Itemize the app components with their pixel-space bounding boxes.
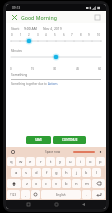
staticText: 45 <box>76 67 80 71</box>
button[interactable]: . <box>82 190 91 199</box>
staticText: i <box>80 159 82 165</box>
staticText: SAVE <box>35 138 43 142</box>
staticText: Something <box>11 73 28 77</box>
button[interactable]: m <box>82 179 91 188</box>
button[interactable]: n <box>72 179 81 188</box>
button[interactable]: t <box>46 157 55 166</box>
button[interactable]: Enter <box>92 190 105 199</box>
button[interactable]: CONTINUE <box>53 136 86 144</box>
button[interactable]: SAVE <box>26 136 51 144</box>
staticText: e <box>29 159 32 165</box>
button[interactable]: Suggestion <box>73 151 95 153</box>
staticText: 30 <box>53 67 57 71</box>
staticText: 9:00 AM <box>24 26 37 31</box>
staticText: o <box>89 159 92 165</box>
button[interactable]: x <box>32 179 41 188</box>
button[interactable]: v <box>52 179 61 188</box>
button[interactable]: f <box>42 168 51 177</box>
staticText: n <box>75 181 78 187</box>
button[interactable]: Emoji <box>31 190 40 199</box>
button[interactable]: ?123 <box>7 190 20 199</box>
button[interactable]: 9:00 AM <box>23 26 38 31</box>
staticText: a <box>15 170 18 176</box>
staticText: m <box>85 181 89 187</box>
button[interactable]: b <box>62 179 71 188</box>
button[interactable]: Back <box>79 200 88 209</box>
button[interactable]: w <box>16 157 25 166</box>
staticText: d <box>35 170 38 176</box>
staticText: h <box>65 170 68 176</box>
staticText: z <box>26 181 28 187</box>
button[interactable]: Actions <box>48 82 58 86</box>
button[interactable]: Slider <box>11 37 101 45</box>
button[interactable]: Shift <box>7 179 21 188</box>
button[interactable]: Slider <box>11 53 101 61</box>
button[interactable]: Close <box>10 13 19 22</box>
staticText: , <box>25 192 26 197</box>
button[interactable]: u <box>66 157 75 166</box>
button[interactable]: l <box>92 168 101 177</box>
staticText: Minutes <box>11 49 22 53</box>
button[interactable]: Mic <box>97 149 103 155</box>
button[interactable]: o <box>86 157 95 166</box>
button[interactable]: k <box>82 168 91 177</box>
staticText: y <box>59 159 62 165</box>
staticText: Nov 4, 2019 <box>43 26 62 31</box>
staticText: 09:13 <box>12 6 21 10</box>
button[interactable]: Home <box>52 200 61 209</box>
staticText: 15 <box>31 67 35 71</box>
staticText: u <box>69 159 72 165</box>
staticText: Start: <box>11 26 20 31</box>
staticText: 1 <box>20 33 22 37</box>
button[interactable]: , <box>21 190 30 199</box>
button[interactable]: Space <box>41 190 81 199</box>
staticText: w <box>19 159 23 165</box>
staticText: 7 <box>71 33 73 37</box>
staticText: f <box>46 170 48 176</box>
staticText: t <box>50 159 52 165</box>
button[interactable]: g <box>52 168 61 177</box>
staticText: 10 <box>97 33 101 37</box>
staticText: English <box>56 193 66 197</box>
staticText: 0 <box>10 67 12 71</box>
staticText: 2 <box>28 33 30 37</box>
button[interactable]: s <box>22 168 31 177</box>
staticText: Actions <box>48 82 58 86</box>
button[interactable]: c <box>42 179 51 188</box>
button[interactable]: Voice input <box>9 148 16 155</box>
staticText: l <box>96 170 98 176</box>
button[interactable]: y <box>56 157 65 166</box>
button[interactable]: a <box>11 168 21 177</box>
staticText: v <box>55 181 58 187</box>
staticText: p <box>99 159 102 165</box>
button[interactable]: More options <box>93 13 102 22</box>
button[interactable]: i <box>76 157 85 166</box>
button[interactable]: e <box>26 157 35 166</box>
staticText: c <box>45 181 48 187</box>
staticText: k <box>85 170 88 176</box>
button[interactable]: q <box>7 157 15 166</box>
staticText: q <box>10 159 13 165</box>
staticText: x <box>35 181 38 187</box>
button[interactable]: r <box>36 157 45 166</box>
button[interactable]: Nov 4, 2019 <box>42 26 63 31</box>
button[interactable]: z <box>22 179 31 188</box>
staticText: 6 <box>63 33 65 37</box>
button[interactable]: p <box>96 157 105 166</box>
staticText: 3 <box>37 33 39 37</box>
staticText: r <box>40 159 42 165</box>
staticText: Something together due to <box>11 82 48 86</box>
button[interactable]: Recents <box>24 200 33 209</box>
staticText: 4 <box>45 33 47 37</box>
staticText: 60 <box>98 67 102 71</box>
staticText: . <box>86 192 87 197</box>
staticText: 8 <box>80 33 82 37</box>
staticText: 9 <box>88 33 90 37</box>
button[interactable]: Backspace <box>92 179 105 188</box>
staticText: Good Morning <box>21 14 57 21</box>
button[interactable]: d <box>32 168 41 177</box>
button[interactable]: j <box>72 168 81 177</box>
button[interactable]: h <box>62 168 71 177</box>
staticText: j <box>76 170 78 176</box>
staticText: CONTINUE <box>62 138 78 142</box>
